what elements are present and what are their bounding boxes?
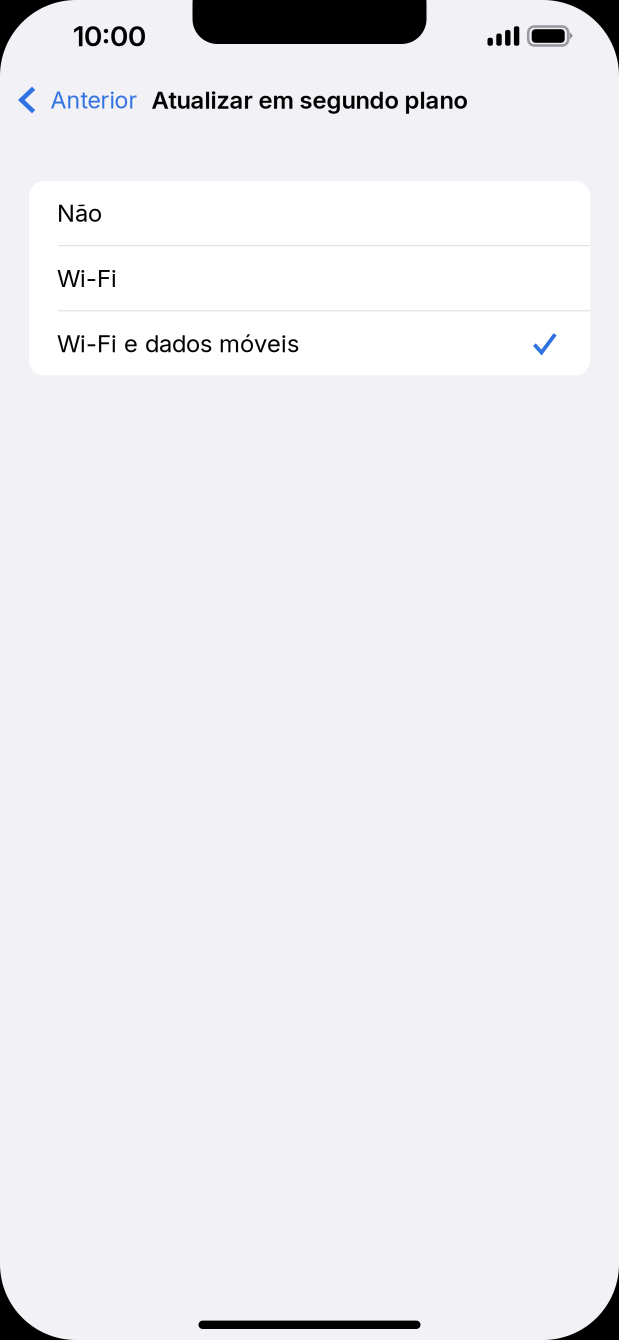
staticText: Atualizar em segundo plano bbox=[151, 85, 467, 114]
staticText: Anterior bbox=[50, 86, 137, 114]
button[interactable]: Anterior bbox=[0, 72, 151, 128]
staticText: Wi-Fi bbox=[57, 264, 117, 293]
button[interactable]: Wi-Fi bbox=[29, 246, 590, 310]
staticText: 10:00 bbox=[73, 19, 146, 53]
staticText: Wi-Fi e dados móveis bbox=[57, 329, 299, 358]
button[interactable]: Não bbox=[29, 181, 590, 245]
staticText: Não bbox=[57, 198, 102, 227]
button[interactable]: Wi-Fi e dados móveis bbox=[29, 311, 590, 375]
